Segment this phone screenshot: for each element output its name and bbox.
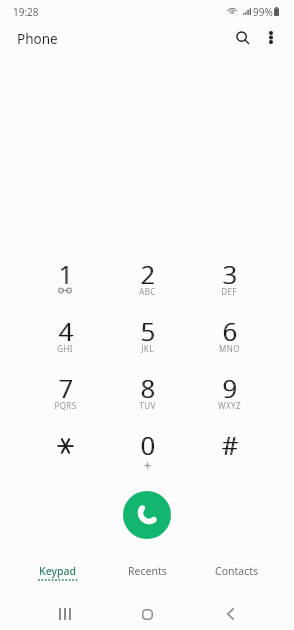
staticText: 2 <box>140 257 155 291</box>
staticText: 9 <box>223 371 238 405</box>
staticText: WXYZ <box>218 400 241 411</box>
button[interactable]: Search <box>227 22 259 54</box>
staticText: 3 <box>222 257 237 291</box>
staticText: # <box>222 428 239 462</box>
staticText: Recents <box>128 564 167 578</box>
button[interactable] <box>24 430 106 487</box>
staticText: 3 <box>223 257 238 291</box>
button[interactable]: 4 <box>24 316 106 373</box>
button[interactable]: 1 <box>24 259 106 316</box>
staticText: 5 <box>141 314 156 348</box>
staticText: Contacts <box>215 564 259 578</box>
staticText: 99% <box>253 5 273 19</box>
staticText: 7 <box>58 371 73 405</box>
button[interactable]: 6 <box>188 316 270 373</box>
staticText: TUV <box>139 400 156 411</box>
staticText: 0 <box>141 428 156 462</box>
staticText: 4 <box>58 314 73 348</box>
staticText: PQRS <box>54 400 77 411</box>
button[interactable]: 8 <box>106 373 188 430</box>
staticText: 4 <box>59 314 74 348</box>
button[interactable]: 5 <box>106 316 188 373</box>
staticText: 8 <box>140 371 155 405</box>
staticText: 2 <box>141 257 156 291</box>
button[interactable]: 7 <box>24 373 106 430</box>
staticText: 5 <box>140 314 155 348</box>
button[interactable]: 3 <box>188 259 270 316</box>
staticText: JKL <box>141 343 154 354</box>
staticText: 0 <box>140 428 155 462</box>
button[interactable]: Home <box>106 598 188 630</box>
staticText: 1 <box>59 257 74 291</box>
button[interactable]: 9 <box>188 373 270 430</box>
staticText: 9 <box>222 371 237 405</box>
button[interactable]: Keypad <box>13 558 103 588</box>
staticText: 8 <box>141 371 156 405</box>
button[interactable]: 2 <box>106 259 188 316</box>
staticText: GHI <box>57 343 73 354</box>
button[interactable]: Call <box>123 491 171 539</box>
button[interactable]: 0 <box>106 430 188 487</box>
staticText: 6 <box>223 314 238 348</box>
staticText: DEF <box>221 286 237 297</box>
staticText: 19:28 <box>13 5 39 19</box>
staticText: Phone <box>17 30 58 48</box>
button[interactable]: Recents <box>103 558 192 588</box>
staticText: ABC <box>139 286 156 297</box>
staticText: # <box>221 428 238 462</box>
staticText: 1 <box>58 257 73 291</box>
button[interactable]: Recent apps <box>24 598 106 630</box>
button[interactable]: # <box>188 430 270 487</box>
staticText: MNO <box>219 343 240 354</box>
button[interactable]: Contacts <box>192 558 281 588</box>
staticText: 7 <box>59 371 74 405</box>
button[interactable]: Back <box>188 598 270 630</box>
button[interactable]: More options <box>256 22 286 52</box>
staticText: Keypad <box>39 564 77 578</box>
staticText: 6 <box>222 314 237 348</box>
